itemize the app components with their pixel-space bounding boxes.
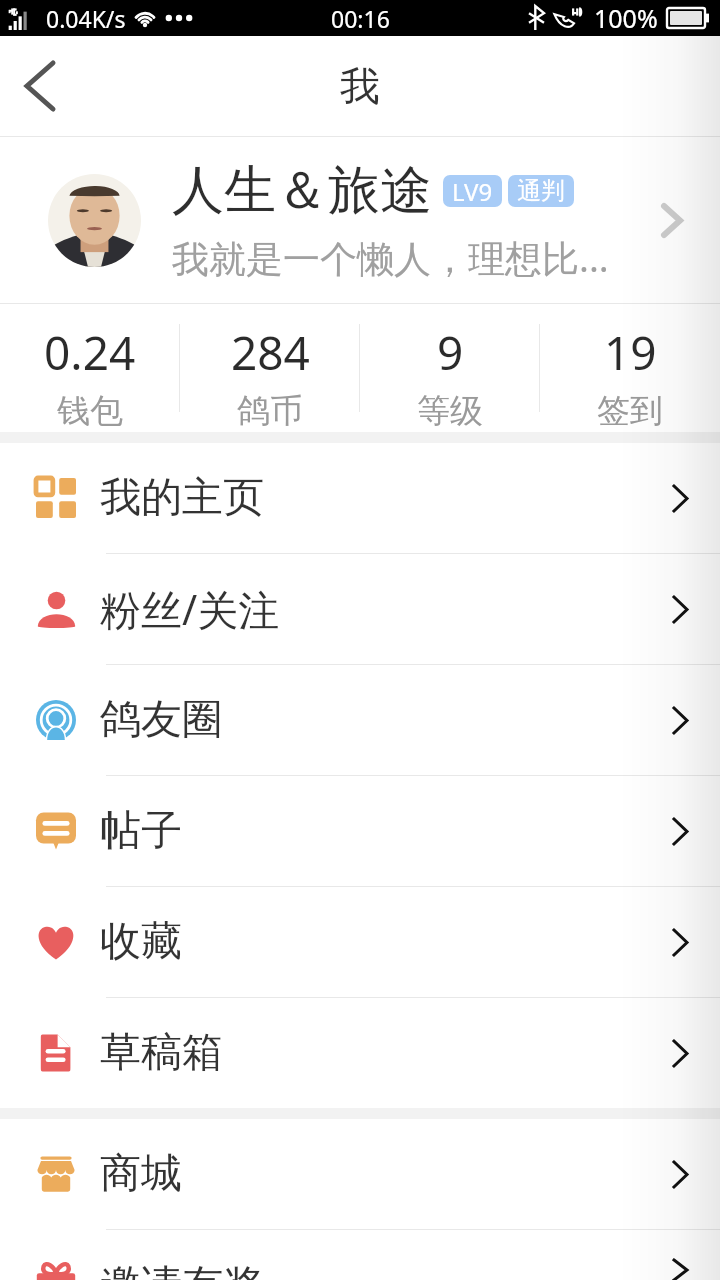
staticText: 人生＆旅途	[172, 158, 432, 224]
staticText: 0.04K/s	[46, 3, 126, 34]
staticText: 粉丝/关注	[100, 581, 280, 637]
staticText: 我就是一个懒人，理想比...	[172, 232, 609, 283]
button[interactable]: 284	[180, 304, 360, 432]
button[interactable]: 粉丝/关注	[0, 554, 720, 664]
staticText: 等级	[417, 390, 483, 432]
staticText: 签到	[597, 390, 663, 432]
button[interactable]: 9	[360, 304, 540, 432]
staticText: 草稿箱	[100, 1027, 223, 1079]
staticText: 帖子	[100, 805, 182, 857]
staticText: 我	[340, 61, 380, 111]
button[interactable]: Back	[0, 46, 80, 126]
button[interactable]: 收藏	[0, 887, 720, 997]
staticText: 284	[231, 321, 310, 384]
staticText: LV9	[452, 175, 493, 207]
staticText: 19	[604, 321, 657, 384]
button[interactable]: 0.24	[0, 304, 180, 432]
staticText: 收藏	[100, 916, 182, 968]
staticText: 9	[437, 321, 464, 384]
staticText: 00:16	[331, 3, 390, 34]
button[interactable]: 19	[540, 304, 720, 432]
button[interactable]: 商城	[0, 1119, 720, 1229]
staticText: 通判	[517, 176, 565, 206]
button[interactable]: 邀请有奖	[0, 1230, 720, 1280]
button[interactable]: 鸽友圈	[0, 665, 720, 775]
button[interactable]: 我的主页	[0, 443, 720, 553]
staticText: 鸽币	[237, 390, 303, 432]
button[interactable]: 人生＆旅途	[0, 137, 720, 303]
staticText: 鸽友圈	[100, 694, 223, 746]
staticText: 100%	[594, 1, 658, 35]
staticText: 邀请有奖	[100, 1260, 264, 1280]
button[interactable]: 帖子	[0, 776, 720, 886]
staticText: 商城	[100, 1148, 182, 1200]
staticText: 钱包	[57, 390, 123, 432]
button[interactable]: 草稿箱	[0, 998, 720, 1108]
staticText: 我的主页	[100, 472, 264, 524]
staticText: 0.24	[44, 321, 136, 384]
